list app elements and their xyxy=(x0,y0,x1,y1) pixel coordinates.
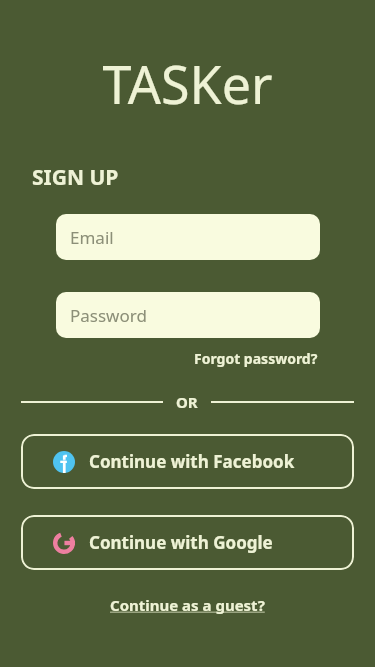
button[interactable]: Email input xyxy=(56,214,320,260)
staticText: TASKer xyxy=(102,48,273,119)
staticText: Forgot password? xyxy=(194,349,318,368)
staticText: Continue as a guest? xyxy=(110,595,265,615)
button[interactable]: Continue with Facebook xyxy=(21,434,354,489)
button[interactable]: Continue as a guest? xyxy=(106,592,269,618)
staticText: Email xyxy=(70,226,114,249)
staticText: OR xyxy=(176,392,198,412)
button[interactable]: Continue with Google xyxy=(21,515,354,570)
button[interactable]: Password input xyxy=(56,292,320,338)
staticText: Continue with Google xyxy=(89,531,273,554)
staticText: Password xyxy=(70,304,147,327)
staticText: SIGN UP xyxy=(32,163,119,192)
staticText: Continue with Facebook xyxy=(89,450,295,473)
button[interactable]: Forgot password? xyxy=(192,347,320,370)
